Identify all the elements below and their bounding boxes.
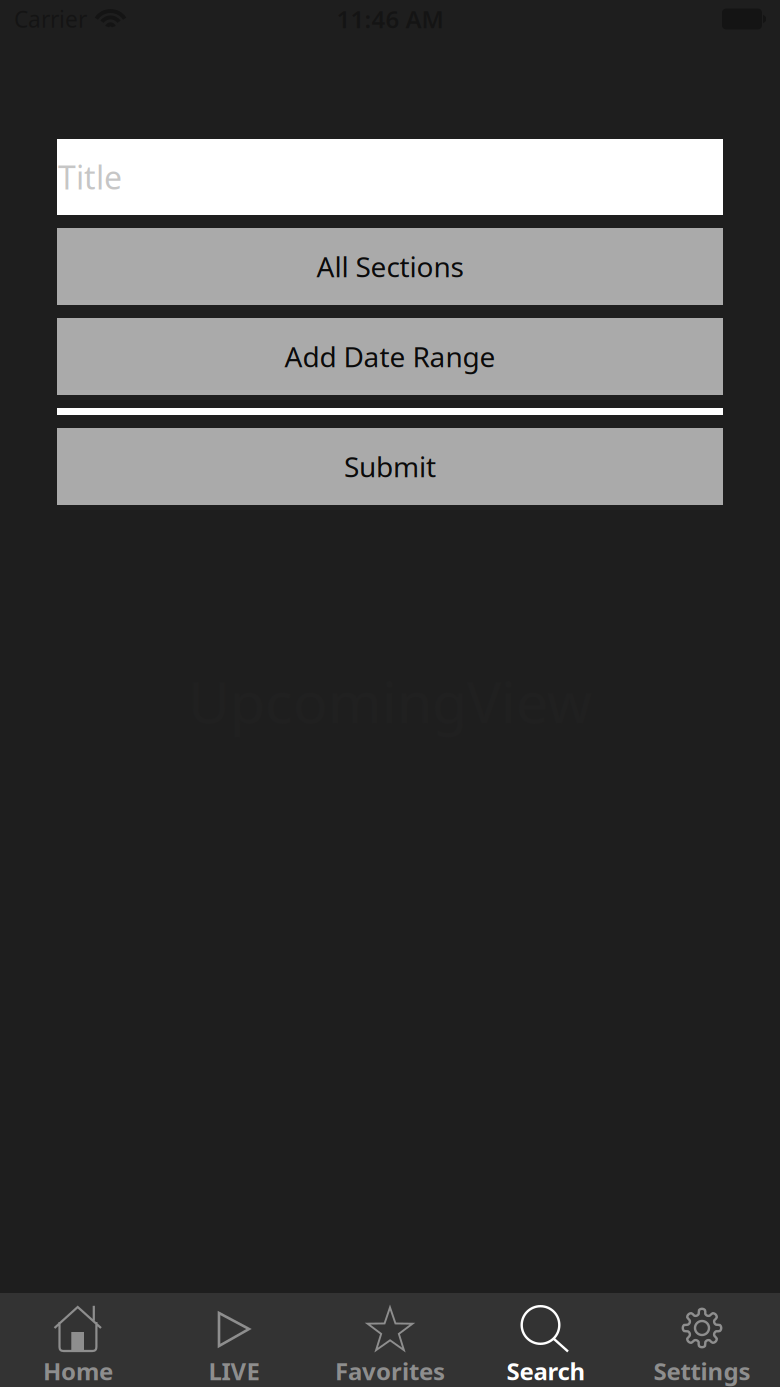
staticText: 11:46 AM <box>336 3 443 35</box>
staticText: Search <box>506 1355 585 1387</box>
staticText: Settings <box>653 1355 750 1387</box>
staticText: Title <box>58 156 122 198</box>
staticText: LIVE <box>208 1355 259 1387</box>
button[interactable]: Submit <box>57 428 723 505</box>
staticText: Home <box>43 1355 113 1387</box>
staticText: Favorites <box>335 1355 445 1387</box>
button[interactable]: All Sections <box>57 228 723 305</box>
staticText: Add Date Range <box>284 338 495 375</box>
button[interactable]: Add Date Range <box>57 318 723 395</box>
button[interactable]: Settings <box>624 1293 780 1387</box>
staticText: All Sections <box>316 248 463 285</box>
button[interactable]: Search <box>468 1293 624 1387</box>
button[interactable]: Favorites <box>312 1293 468 1387</box>
staticText: Submit <box>344 448 436 485</box>
button[interactable]: LIVE <box>156 1293 312 1387</box>
staticText: Carrier <box>14 4 87 34</box>
button[interactable]: Home <box>0 1293 156 1387</box>
